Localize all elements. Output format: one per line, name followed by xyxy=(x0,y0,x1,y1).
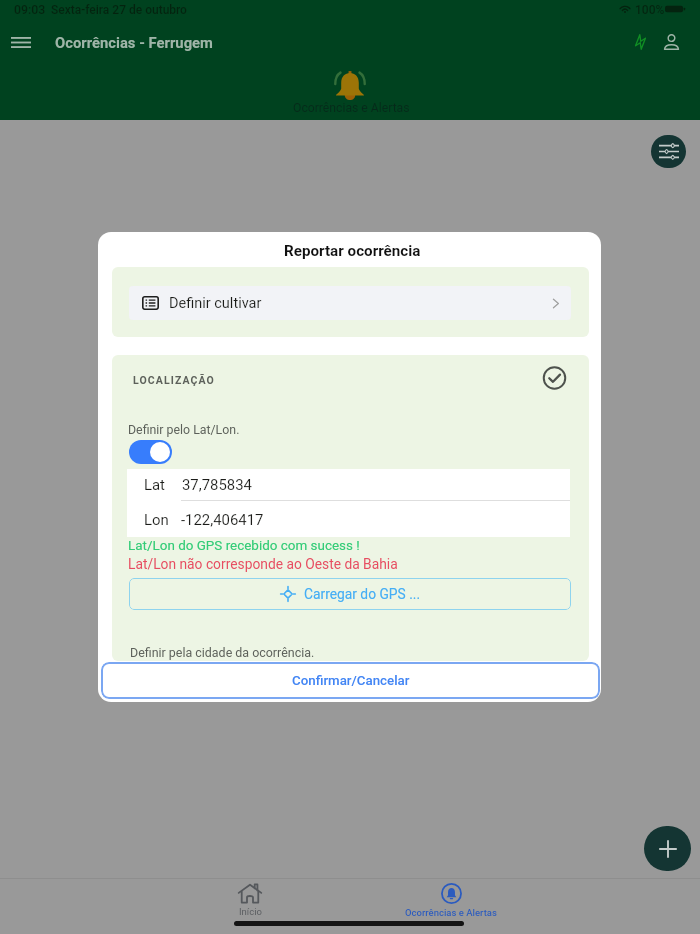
button[interactable]: Atalho rápido xyxy=(622,24,658,60)
staticText: Ocorrências - Ferrugem xyxy=(55,34,213,51)
staticText: Início xyxy=(239,906,262,917)
staticText: Lon xyxy=(144,511,169,528)
staticText: Definir cultivar xyxy=(169,295,262,312)
staticText: Ocorrências e Alertas xyxy=(293,101,410,115)
button[interactable]: Ocorrências e Alertas xyxy=(405,882,497,918)
staticText: -122,406417 xyxy=(181,511,264,528)
staticText: Definir pela cidade da ocorrência. xyxy=(130,645,315,660)
staticText: 09:03 xyxy=(14,3,46,17)
staticText: Lat/Lon não corresponde ao Oeste da Bahi… xyxy=(128,556,398,572)
button[interactable]: Definir cultivar xyxy=(129,286,571,320)
staticText: Ocorrências e Alertas xyxy=(405,907,497,918)
staticText: Carregar do GPS ... xyxy=(304,586,421,602)
staticText: Confirmar/Cancelar xyxy=(292,673,410,689)
staticText: Definir pelo Lat/Lon. xyxy=(128,423,240,437)
staticText: Sexta-feira 27 de outubro xyxy=(51,3,187,17)
button[interactable]: Menu xyxy=(3,24,39,60)
button[interactable]: Início xyxy=(205,883,295,917)
button[interactable]: Confirmar localização xyxy=(540,364,568,392)
staticText: LOCALIZAÇÃO xyxy=(133,374,215,386)
button[interactable]: Adicionar ocorrência xyxy=(644,826,691,871)
staticText: 100% xyxy=(635,3,665,17)
button[interactable]: Filtros xyxy=(651,135,686,168)
staticText: Lat/Lon do GPS recebido com sucess ! xyxy=(128,538,360,554)
button[interactable]: Confirmar/Cancelar xyxy=(101,662,600,699)
staticText: Lat xyxy=(144,476,165,493)
staticText: 37,785834 xyxy=(182,476,252,493)
button[interactable]: Conta xyxy=(653,24,689,60)
staticText: Reportar ocorrência xyxy=(284,242,421,260)
button[interactable]: Carregar do GPS ... xyxy=(129,578,571,610)
button[interactable]: Alternar Lat/Lon xyxy=(129,440,172,464)
